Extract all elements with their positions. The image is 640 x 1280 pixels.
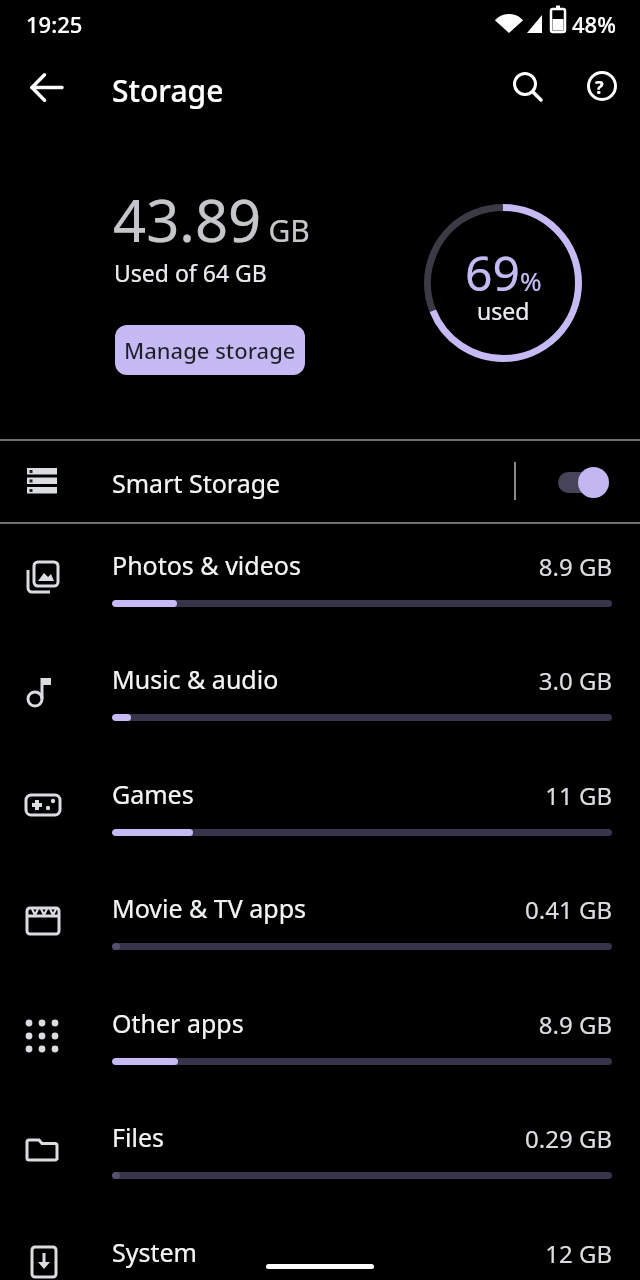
staticText: 43.89 GB xyxy=(113,180,310,259)
staticText: 48% xyxy=(572,9,616,39)
staticText: Storage xyxy=(112,70,224,111)
staticText: Music & audio xyxy=(112,662,279,696)
staticText: 3.0 GB xyxy=(112,664,612,697)
staticText: Manage storage xyxy=(124,335,296,365)
button[interactable]: Movie & TV apps xyxy=(0,867,640,981)
button[interactable]: Files xyxy=(0,1096,640,1210)
button[interactable]: ? xyxy=(578,62,626,110)
staticText: Games xyxy=(112,777,194,811)
staticText: 11 GB xyxy=(112,779,612,812)
staticText: Used of 64 GB xyxy=(114,257,267,288)
button[interactable] xyxy=(503,62,551,110)
staticText: Other apps xyxy=(112,1006,244,1040)
button[interactable]: Smart Storage xyxy=(0,441,640,522)
staticText: Movie & TV apps xyxy=(112,891,307,925)
button[interactable] xyxy=(550,459,616,505)
button[interactable]: System xyxy=(0,1211,640,1280)
staticText: 8.9 GB xyxy=(112,1008,612,1041)
staticText: 12 GB xyxy=(112,1237,612,1270)
staticText: 0.29 GB xyxy=(112,1122,612,1155)
staticText: 0.41 GB xyxy=(112,893,612,926)
button[interactable] xyxy=(20,64,68,112)
staticText: used xyxy=(477,295,530,326)
button[interactable]: Other apps xyxy=(0,982,640,1096)
staticText: Files xyxy=(112,1120,164,1154)
button[interactable]: Photos & videos xyxy=(0,524,640,638)
staticText: Photos & videos xyxy=(112,548,301,582)
button[interactable]: Music & audio xyxy=(0,638,640,752)
staticText: 69% xyxy=(465,240,542,305)
staticText: Smart Storage xyxy=(112,466,281,500)
staticText: ? xyxy=(595,75,604,100)
button[interactable]: Manage storage xyxy=(115,325,305,375)
staticText: System xyxy=(112,1235,197,1269)
button[interactable]: Games xyxy=(0,753,640,867)
staticText: 19:25 xyxy=(26,9,83,39)
staticText: 8.9 GB xyxy=(112,550,612,583)
